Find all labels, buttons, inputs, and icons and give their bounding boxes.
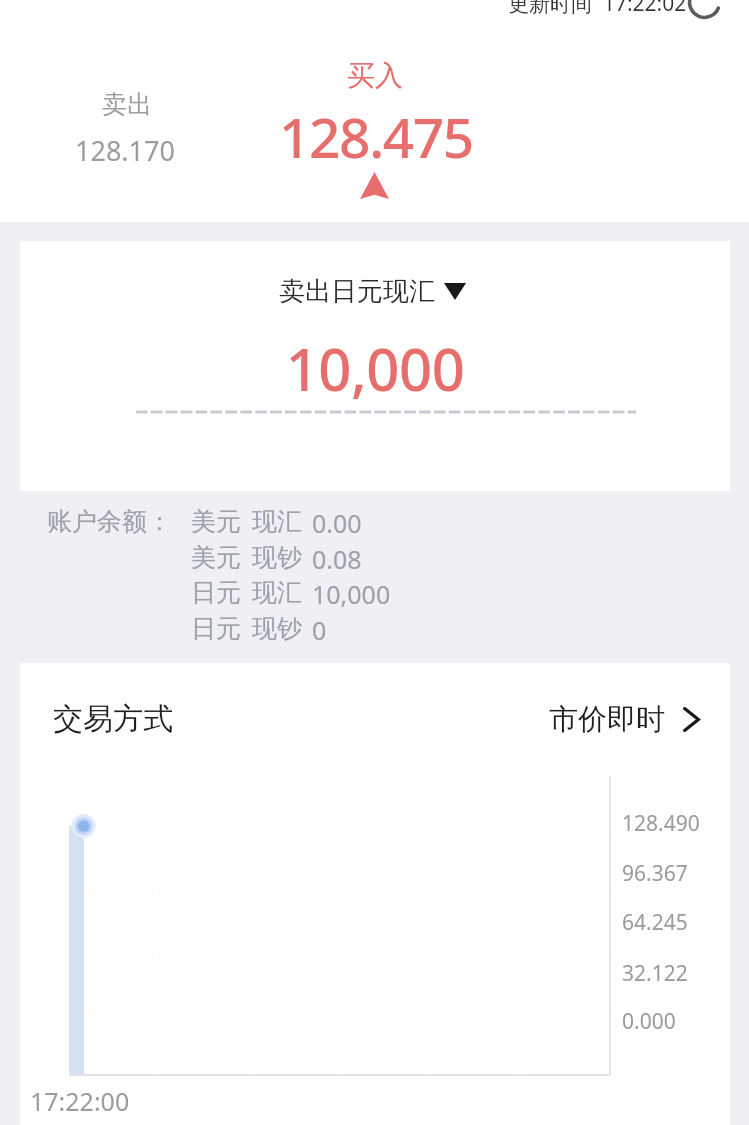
staticText: 日元 <box>191 577 241 608</box>
staticText: 现钞 <box>252 542 302 573</box>
button[interactable]: 卖出 <box>41 78 213 178</box>
staticText: 市价即时 <box>549 701 665 738</box>
staticText: 0 <box>312 613 327 647</box>
staticText: 现钞 <box>252 613 302 644</box>
button[interactable]: Refresh <box>687 0 722 20</box>
staticText: 现汇 <box>252 577 302 608</box>
staticText: 96.367 <box>622 859 688 888</box>
staticText: 128.490 <box>622 809 700 838</box>
staticText: 账户余额： <box>47 506 172 537</box>
button[interactable]: 卖出日元现汇 <box>271 271 474 312</box>
staticText: 美元 <box>191 506 241 537</box>
staticText: 日元 <box>191 613 241 644</box>
button[interactable]: 买入 <box>240 42 512 210</box>
staticText: 17:22:00 <box>30 1084 130 1118</box>
staticText: 64.245 <box>622 908 688 937</box>
staticText: 0.08 <box>312 542 362 576</box>
button[interactable]: 交易方式 <box>20 674 730 764</box>
staticText: 32.122 <box>622 959 688 988</box>
staticText: 10,000 <box>20 329 730 408</box>
staticText: 现汇 <box>252 506 302 537</box>
staticText: 美元 <box>191 542 241 573</box>
staticText: 卖出 <box>102 89 152 120</box>
other: Rate rising <box>360 172 389 199</box>
staticText: 卖出日元现汇 <box>279 275 435 308</box>
staticText: 128.475 <box>279 99 473 174</box>
staticText: 交易方式 <box>53 700 173 738</box>
staticText: 128.170 <box>75 132 175 169</box>
staticText: 0.00 <box>312 506 362 540</box>
staticText: 10,000 <box>312 577 391 611</box>
staticText: 更新时间 17:22:02 <box>508 0 687 18</box>
staticText: 买入 <box>347 58 403 93</box>
staticText: 0.000 <box>622 1007 676 1036</box>
